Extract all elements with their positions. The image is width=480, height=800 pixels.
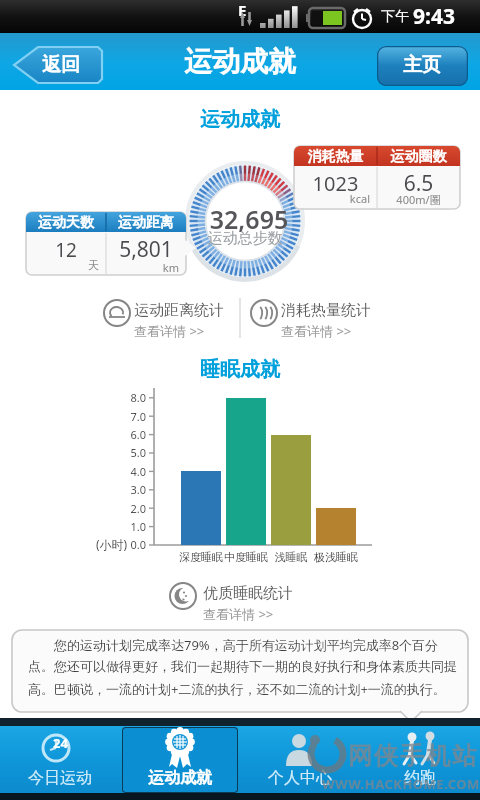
staticText: 3.0 [110,482,146,497]
staticText: 运动成就 [0,107,480,132]
staticText: 浅睡眠 [261,550,321,564]
staticText: 天 [26,258,99,272]
staticText: 查看详情 >> [203,605,274,623]
staticText: 消耗热量 [294,148,377,166]
staticText: 7.0 [110,409,146,424]
staticText: 6.0 [110,427,146,442]
staticText: 个人中心 [240,768,360,788]
button[interactable]: 消耗热量统计 [245,294,385,342]
staticText: 返回 [42,53,80,77]
staticText: 运动总步数 [145,229,345,248]
staticText: 睡眠成就 [0,357,480,382]
staticText: 400m/圈 [377,192,460,207]
button[interactable]: 运动成就 [120,726,240,800]
staticText: 极浅睡眠 [306,550,366,564]
button[interactable]: 约跑 [360,726,480,800]
staticText: 您的运动计划完成率达79%，高于所有运动计划平均完成率8个百分 点。您还可以做得… [28,636,458,698]
staticText: 查看详情 >> [281,322,352,340]
staticText: 运动圈数 [377,148,460,166]
staticText: 6.5 [377,169,460,198]
staticText: 运动成就 [0,44,480,79]
staticText: 8.0 [110,390,146,405]
staticText: km [106,260,179,275]
staticText: kcal [294,191,370,206]
staticText: 9:43 [413,2,455,31]
button[interactable]: 主页 [377,46,468,86]
staticText: 4.0 [110,464,146,479]
staticText: 24 [53,734,68,752]
staticText: 1023 [294,170,377,197]
staticText: 5,801 [106,235,186,264]
staticText: 运动距离统计 [134,301,224,320]
staticText: 查看详情 >> [134,322,205,340]
staticText: 12 [26,237,106,263]
staticText: 2.0 [110,501,146,516]
staticText: 运动距离 [106,214,186,232]
staticText: 5.0 [110,445,146,460]
staticText: 深度睡眠 [171,550,231,564]
staticText: E [238,0,247,20]
staticText: 约跑 [360,768,480,788]
button[interactable]: 运动距离统计 [95,294,235,342]
staticText: 下午 [381,8,409,26]
staticText: 消耗热量统计 [281,301,371,320]
staticText: WWW.HACKHOME.COM [322,775,480,793]
staticText: 1.0 [110,519,146,534]
staticText: 今日运动 [0,768,120,788]
staticText: 优质睡眠统计 [203,584,293,603]
staticText: 主页 [403,53,441,77]
staticText: 中度睡眠 [216,550,276,564]
button[interactable]: 24 [0,726,120,800]
staticText: 网侠手机站 [347,741,477,771]
staticText: 运动天数 [26,214,106,232]
button[interactable]: 优质睡眠统计 [160,578,330,628]
button[interactable]: 返回 [10,45,106,87]
button[interactable]: 个人中心 [240,726,360,800]
staticText: (小时) [96,536,128,552]
staticText: 32,695 [149,202,349,236]
staticText: 运动成就 [120,768,240,788]
staticText: 0.0 [110,537,146,552]
